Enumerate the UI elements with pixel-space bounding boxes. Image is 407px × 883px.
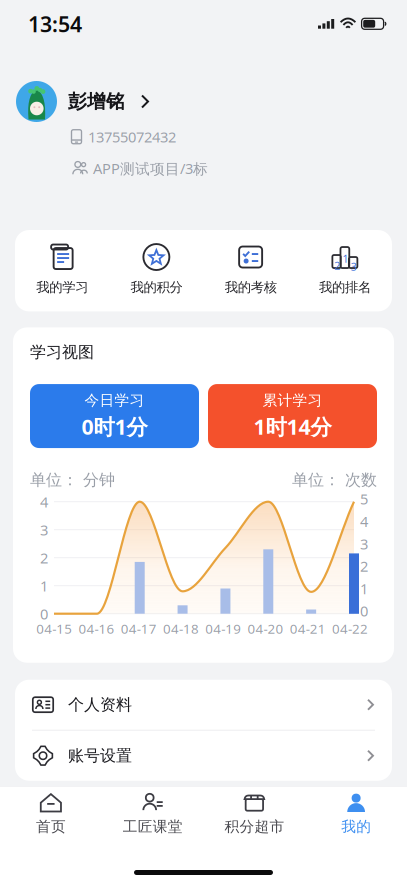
- staticText: 5: [360, 489, 368, 509]
- button[interactable]: 我的: [305, 792, 407, 835]
- staticText: 04-17: [121, 620, 157, 637]
- staticText: 积分超市: [224, 817, 284, 835]
- staticText: 4: [40, 492, 48, 511]
- staticText: 4: [360, 512, 368, 531]
- staticText: 04-16: [78, 620, 114, 637]
- staticText: APP测试项目/3标: [93, 158, 208, 178]
- staticText: 0: [360, 601, 368, 621]
- button[interactable]: 首页: [0, 792, 102, 835]
- staticText: 个人资料: [68, 695, 132, 715]
- staticText: 04-19: [205, 620, 241, 637]
- staticText: 2: [334, 258, 340, 273]
- staticText: 单位： 分钟: [30, 470, 115, 490]
- staticText: 2: [360, 556, 368, 576]
- staticText: 13:54: [28, 10, 82, 38]
- staticText: 13755072432: [88, 127, 176, 146]
- staticText: 04-21: [290, 620, 326, 637]
- staticText: 1: [40, 576, 48, 595]
- staticText: 04-18: [163, 620, 199, 637]
- staticText: 累计学习: [262, 391, 322, 409]
- staticText: 04-20: [247, 620, 283, 637]
- staticText: 0: [40, 604, 48, 623]
- button[interactable]: 个人资料: [15, 680, 392, 730]
- staticText: 1时14分: [253, 412, 331, 441]
- staticText: 学习视图: [30, 342, 94, 362]
- staticText: 我的排名: [319, 279, 371, 295]
- staticText: 今日学习: [84, 391, 144, 409]
- staticText: 我的积分: [130, 279, 182, 295]
- staticText: 我的考核: [225, 279, 277, 295]
- button[interactable]: 我的积分: [109, 243, 203, 295]
- staticText: 我的: [341, 817, 371, 835]
- staticText: 0时1分: [81, 412, 147, 441]
- staticText: 账号设置: [68, 746, 132, 766]
- staticText: 1: [360, 579, 368, 598]
- staticText: 04-15: [36, 620, 72, 637]
- staticText: 首页: [36, 817, 66, 835]
- button[interactable]: 2: [298, 243, 392, 295]
- button[interactable]: 账号设置: [15, 731, 392, 781]
- staticText: 彭增铭: [68, 90, 125, 113]
- staticText: 1: [342, 251, 348, 266]
- staticText: 我的学习: [36, 279, 88, 295]
- button[interactable]: 工匠课堂: [102, 792, 204, 835]
- staticText: 3: [360, 534, 368, 553]
- staticText: 04-22: [332, 620, 368, 637]
- staticText: 单位： 次数: [292, 470, 377, 490]
- staticText: 3: [351, 259, 357, 274]
- staticText: 工匠课堂: [123, 817, 183, 835]
- staticText: 3: [40, 520, 48, 539]
- button[interactable]: 我的学习: [15, 243, 109, 295]
- staticText: 2: [40, 548, 48, 567]
- button[interactable]: 彭增铭: [16, 81, 389, 122]
- button[interactable]: 积分超市: [203, 792, 305, 835]
- button[interactable]: 我的考核: [203, 243, 298, 295]
